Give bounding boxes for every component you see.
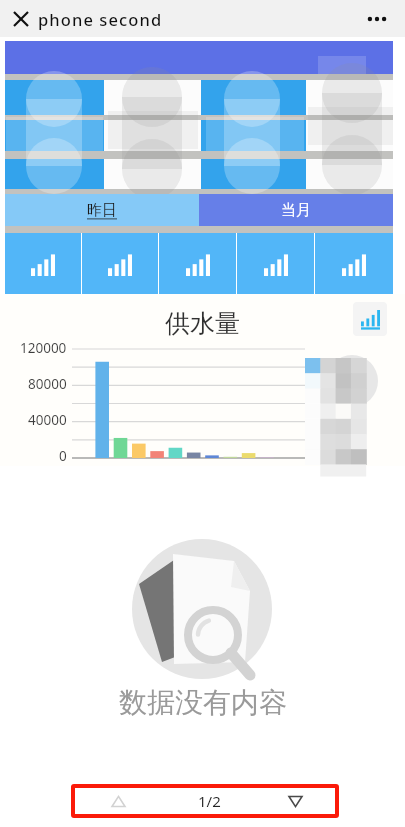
button[interactable]: Next page: [252, 784, 339, 818]
button[interactable]: Statistics: [159, 233, 236, 294]
button[interactable]: Close: [8, 6, 34, 32]
staticText: 1/2: [198, 791, 221, 811]
button[interactable]: Statistics: [5, 233, 81, 294]
staticText: 40000: [28, 411, 67, 429]
staticText: 当月: [281, 201, 311, 220]
staticText: 80000: [28, 375, 67, 393]
button[interactable]: More options: [362, 4, 392, 34]
button[interactable]: Statistics: [315, 233, 393, 294]
button[interactable]: Chart type: [353, 302, 387, 336]
button[interactable]: Statistics: [82, 233, 158, 294]
staticText: 昨日: [87, 201, 117, 220]
staticText: phone second: [38, 8, 163, 30]
staticText: 供水量: [165, 308, 240, 339]
button[interactable]: Statistics: [237, 233, 314, 294]
button[interactable]: 昨日: [5, 194, 199, 226]
button[interactable]: 当月: [199, 194, 393, 226]
staticText: 0: [59, 447, 67, 465]
button[interactable]: Previous page: [71, 784, 166, 818]
staticText: 120000: [20, 339, 67, 357]
staticText: 数据没有内容: [119, 685, 287, 720]
